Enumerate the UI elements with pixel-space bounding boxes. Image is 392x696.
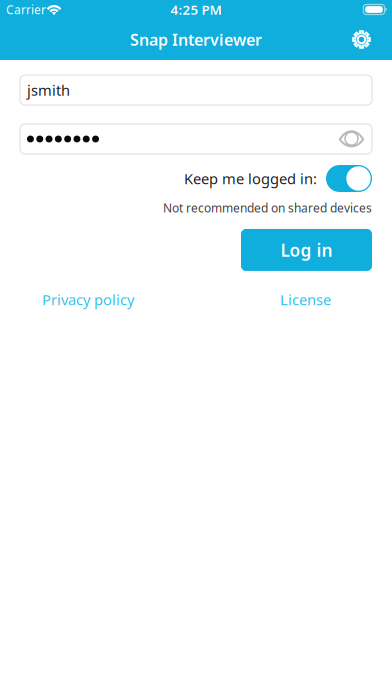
button[interactable]: License xyxy=(280,290,331,309)
staticText: Not recommended on shared devices xyxy=(163,200,372,216)
button[interactable]: Settings xyxy=(341,19,382,60)
button[interactable]: Privacy policy xyxy=(42,290,134,309)
staticText: Snap Interviewer xyxy=(130,29,262,50)
staticText: Carrier xyxy=(6,1,46,17)
staticText: License xyxy=(280,290,331,309)
button[interactable]: Show password xyxy=(338,131,365,147)
staticText: Privacy policy xyxy=(42,290,134,309)
staticText: jsmith xyxy=(27,80,70,100)
button[interactable]: Log in xyxy=(241,229,372,271)
staticText: Log in xyxy=(280,238,332,261)
button[interactable]: Keep me logged in xyxy=(326,165,372,192)
staticText: 4:25 PM xyxy=(170,1,221,18)
staticText: Keep me logged in: xyxy=(184,169,317,188)
